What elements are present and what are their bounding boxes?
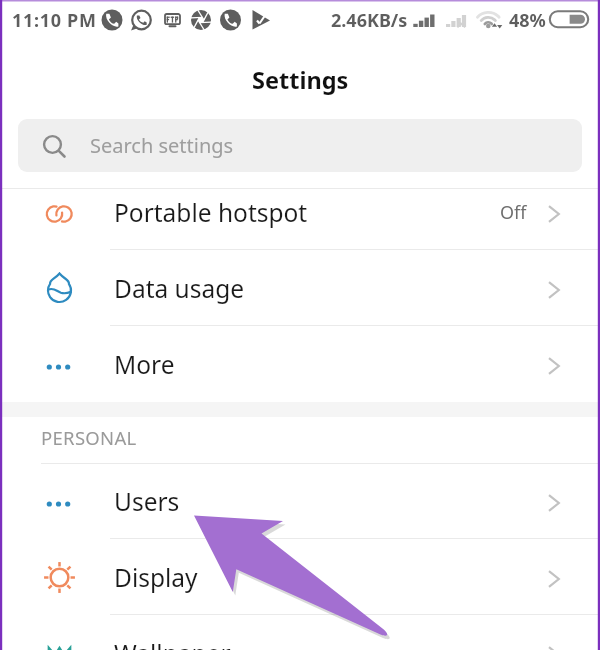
button[interactable]: Display bbox=[0, 539, 600, 615]
button[interactable]: Search settings bbox=[18, 119, 582, 172]
button[interactable]: Portable hotspot bbox=[0, 188, 600, 250]
staticText: Search settings bbox=[90, 132, 234, 159]
staticText: PERSONAL bbox=[41, 425, 137, 450]
staticText: Users bbox=[114, 485, 180, 518]
other: Pointer annotation bbox=[0, 0, 600, 650]
staticText: 11:10 PM bbox=[12, 8, 97, 33]
staticText: Settings bbox=[252, 64, 349, 96]
staticText: Portable hotspot bbox=[114, 196, 308, 229]
button[interactable]: Wallpaper bbox=[0, 615, 600, 650]
staticText: 2.46KB/s bbox=[331, 8, 408, 33]
staticText: 48% bbox=[509, 8, 546, 33]
staticText: Data usage bbox=[114, 272, 245, 305]
button[interactable]: Data usage bbox=[0, 250, 600, 326]
staticText: Display bbox=[114, 561, 198, 594]
staticText: Wallpaper bbox=[114, 637, 231, 650]
staticText: More bbox=[114, 348, 175, 381]
staticText: Off bbox=[500, 200, 527, 225]
button[interactable]: Users bbox=[0, 463, 600, 539]
button[interactable]: More bbox=[0, 326, 600, 402]
